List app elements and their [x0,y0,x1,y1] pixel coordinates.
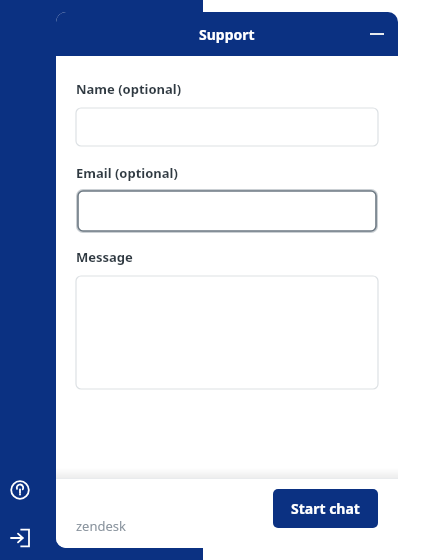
button[interactable]: Support [56,12,398,56]
staticText: Name (optional) [76,80,182,98]
staticText: zendesk [76,517,126,535]
staticText: Message [76,248,133,266]
staticText: Support [199,25,255,44]
button[interactable]: Text input [76,108,378,146]
button[interactable]: Email input [76,189,378,233]
button[interactable]: Sign out [4,522,36,554]
button[interactable]: Minimize [356,13,398,55]
staticText: Start chat [291,499,360,518]
button[interactable]: Start chat [273,489,378,528]
button[interactable]: Help [4,474,36,506]
staticText: Email (optional) [76,164,178,182]
